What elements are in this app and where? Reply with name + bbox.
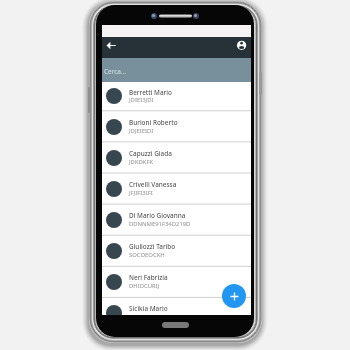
staticText: JDIEI3JDI	[129, 96, 154, 104]
staticText: Crivelli Vanessa	[129, 180, 177, 189]
staticText: Di Mario Giovanna	[129, 211, 186, 220]
staticText: JFJIFI3IFI	[129, 189, 153, 197]
staticText: JDJEIEIDI	[129, 127, 154, 135]
staticText: DHIDCURIJ	[129, 282, 160, 290]
button[interactable]: Di Mario Giovanna	[102, 204, 251, 235]
staticText: Burioni Roberto	[129, 118, 178, 127]
staticText: Sicikia Mario	[129, 304, 168, 313]
button[interactable]: Crivelli Vanessa	[102, 173, 251, 204]
button[interactable]: Neri Fabrizia	[102, 266, 251, 297]
button[interactable]: Giuliozzi Taribo	[102, 235, 251, 266]
button[interactable]: Berretti Mario	[102, 81, 251, 111]
button[interactable]: Capuzzi Giada	[102, 142, 251, 173]
staticText: Neri Fabrizia	[129, 273, 168, 282]
button[interactable]: Burioni Roberto	[102, 111, 251, 142]
staticText: DDNNME91F34D219D	[129, 220, 191, 228]
staticText: Giuliozzi Taribo	[129, 242, 176, 251]
staticText: Cerca...	[104, 67, 126, 76]
staticText: JDKDKFK	[129, 158, 154, 166]
staticText: Berretti Mario	[129, 88, 172, 97]
button[interactable]: Cerca...	[102, 58, 251, 82]
button[interactable]: Sicikia Mario	[102, 297, 251, 315]
button[interactable]: Add contact	[222, 284, 246, 308]
button[interactable]: Account	[234, 37, 250, 58]
staticText: Capuzzi Giada	[129, 149, 172, 158]
button[interactable]: Back	[104, 37, 121, 58]
staticText: SOCOEOCKH	[129, 251, 165, 259]
